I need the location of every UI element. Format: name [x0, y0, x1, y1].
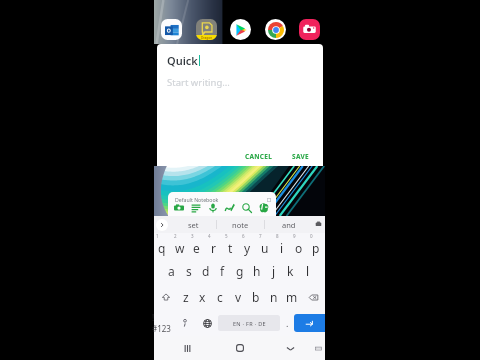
- staticText: n: [270, 289, 278, 305]
- button[interactable]: Home: [228, 336, 251, 360]
- staticText: note: [232, 220, 249, 230]
- staticText: Default Notebook: [175, 196, 219, 203]
- button[interactable]: x: [194, 284, 211, 310]
- button[interactable]: Outlook: [161, 19, 182, 40]
- button[interactable]: SAVE: [287, 149, 314, 164]
- button[interactable]: Shift: [154, 284, 177, 310]
- staticText: k: [287, 263, 294, 279]
- button[interactable]: Expand toolbar: [154, 216, 170, 233]
- button[interactable]: Backspace: [301, 284, 325, 310]
- button[interactable]: 3: [188, 233, 205, 258]
- staticText: EN · FR · DE: [233, 320, 266, 327]
- staticText: 7: [259, 233, 262, 239]
- staticText: a: [168, 263, 175, 279]
- button[interactable]: v: [229, 284, 247, 310]
- button[interactable]: note: [217, 216, 264, 233]
- staticText: c: [217, 289, 223, 305]
- button[interactable]: Handwriting: [225, 203, 235, 213]
- button[interactable]: set: [170, 216, 216, 233]
- button[interactable]: 1: [153, 233, 171, 258]
- staticText: l: [306, 263, 310, 279]
- button[interactable]: .: [280, 310, 294, 336]
- button[interactable]: Dragon: [196, 19, 217, 40]
- button[interactable]: 6: [239, 233, 256, 258]
- button[interactable]: 7: [256, 233, 273, 258]
- staticText: 3: [191, 233, 194, 239]
- staticText: t: [228, 240, 233, 256]
- button[interactable]: Checklist: [191, 203, 201, 213]
- staticText: set: [188, 220, 199, 230]
- button[interactable]: k: [282, 258, 299, 284]
- staticText: d: [202, 263, 210, 279]
- staticText: w: [175, 240, 185, 256]
- button[interactable]: s: [180, 258, 197, 284]
- button[interactable]: Camera: [299, 19, 320, 40]
- button[interactable]: g: [231, 258, 248, 284]
- staticText: q: [158, 240, 166, 256]
- button[interactable]: Keyboard layout: [310, 336, 326, 360]
- staticText: e: [193, 240, 200, 256]
- staticText: 6: [242, 233, 245, 239]
- button[interactable]: 4: [205, 233, 222, 258]
- button[interactable]: Evernote: [259, 203, 269, 213]
- staticText: p: [312, 240, 320, 256]
- staticText: i: [280, 240, 284, 256]
- staticText: h: [253, 263, 261, 279]
- staticText: o: [295, 240, 303, 256]
- button[interactable]: Hide keyboard: [279, 336, 302, 360]
- button[interactable]: Play Store: [230, 19, 251, 40]
- staticText: 9: [293, 233, 296, 239]
- staticText: m: [286, 289, 298, 305]
- button[interactable]: Enter: [294, 314, 325, 332]
- staticText: 0: [310, 233, 313, 239]
- staticText: Quick: [167, 53, 198, 68]
- button[interactable]: 8: [273, 233, 290, 258]
- button[interactable]: !#123: [152, 310, 172, 336]
- staticText: Dragon: [201, 36, 213, 40]
- staticText: !#123: [152, 312, 172, 334]
- staticText: and: [282, 220, 296, 230]
- staticText: SAVE: [292, 152, 309, 161]
- button[interactable]: 5: [222, 233, 239, 258]
- staticText: Start writing...: [167, 76, 230, 89]
- staticText: r: [211, 240, 216, 256]
- button[interactable]: j: [265, 258, 282, 284]
- staticText: y: [244, 240, 251, 256]
- button[interactable]: Camera: [174, 203, 184, 213]
- staticText: u: [261, 240, 269, 256]
- staticText: 1: [156, 233, 159, 239]
- button[interactable]: Recents: [176, 336, 199, 360]
- staticText: v: [235, 289, 242, 305]
- staticText: 8: [276, 233, 279, 239]
- button[interactable]: z: [177, 284, 194, 310]
- button[interactable]: l: [299, 258, 316, 284]
- button[interactable]: Clipboard: [312, 216, 325, 233]
- button[interactable]: EN · FR · DE: [218, 315, 280, 331]
- staticText: 4: [208, 233, 211, 239]
- button[interactable]: c: [211, 284, 229, 310]
- staticText: .: [286, 317, 289, 329]
- button[interactable]: and: [265, 216, 312, 233]
- staticText: g: [236, 263, 244, 279]
- staticText: CANCEL: [245, 152, 273, 161]
- button[interactable]: 9: [290, 233, 307, 258]
- button[interactable]: a: [163, 258, 180, 284]
- button[interactable]: 0: [307, 233, 324, 258]
- button[interactable]: Change language: [196, 310, 218, 336]
- button[interactable]: Voice: [208, 203, 218, 213]
- button[interactable]: Emoji: [174, 310, 196, 336]
- button[interactable]: f: [214, 258, 231, 284]
- button[interactable]: n: [265, 284, 283, 310]
- staticText: z: [183, 289, 189, 305]
- button[interactable]: 2: [171, 233, 188, 258]
- button[interactable]: Search: [242, 203, 252, 213]
- staticText: 2: [174, 233, 177, 239]
- staticText: b: [252, 289, 260, 305]
- button[interactable]: m: [283, 284, 301, 310]
- button[interactable]: Chrome: [265, 19, 286, 40]
- staticText: s: [186, 263, 192, 279]
- button[interactable]: b: [247, 284, 265, 310]
- button[interactable]: d: [197, 258, 214, 284]
- button[interactable]: CANCEL: [240, 149, 278, 164]
- button[interactable]: h: [248, 258, 265, 284]
